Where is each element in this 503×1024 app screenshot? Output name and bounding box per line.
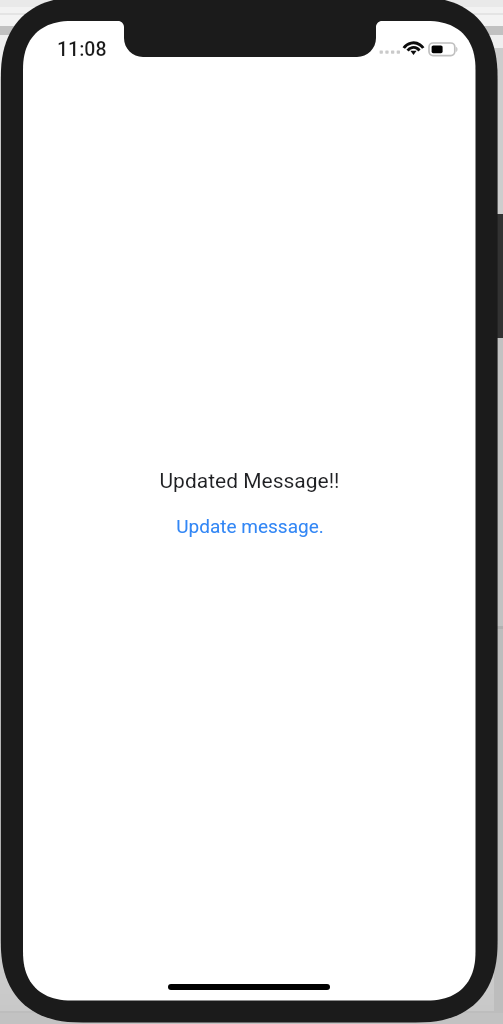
staticText: 11:08 (57, 38, 107, 61)
staticText: Update message. (176, 515, 324, 537)
staticText: Updated Message!! (159, 469, 340, 494)
other: Home indicator (168, 984, 330, 990)
button[interactable]: Update message. (170, 513, 330, 539)
